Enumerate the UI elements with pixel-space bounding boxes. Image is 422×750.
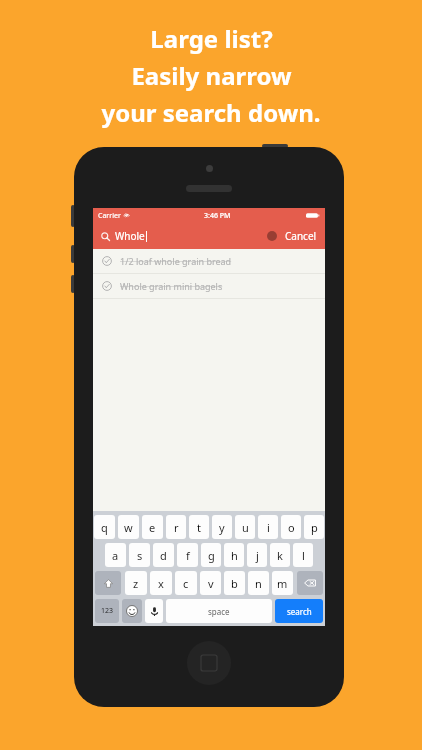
button[interactable]: Search (101, 223, 317, 249)
staticText: Large list? (150, 22, 273, 55)
staticText: Carrier (98, 211, 121, 221)
button[interactable]: x (150, 571, 172, 595)
staticText: o (288, 520, 295, 535)
staticText: i (267, 520, 270, 535)
button[interactable]: v (200, 571, 221, 595)
button[interactable]: 1/2 loaf whole grain bread (93, 249, 325, 273)
other: Search (101, 232, 110, 241)
button[interactable]: u (235, 515, 255, 539)
button[interactable]: Whole grain mini bagels (93, 274, 325, 298)
button[interactable]: s (129, 543, 150, 567)
button[interactable]: g (201, 543, 221, 567)
staticText: l (302, 548, 305, 563)
staticText: p (311, 520, 318, 535)
button[interactable]: j (247, 543, 267, 567)
staticText: h (231, 548, 238, 563)
button[interactable]: Dictate (145, 599, 163, 623)
button[interactable]: search (275, 599, 323, 623)
staticText: k (277, 548, 283, 563)
staticText: 1/2 loaf whole grain bread (120, 255, 232, 267)
staticText: x (158, 576, 164, 591)
staticText: your search down. (101, 96, 321, 129)
button[interactable]: e (142, 515, 163, 539)
staticText: a (112, 548, 119, 563)
staticText: search (287, 606, 312, 617)
button[interactable]: f (177, 543, 198, 567)
staticText: t (197, 520, 201, 535)
staticText: Easily narrow (131, 59, 292, 92)
button[interactable]: d (153, 543, 174, 567)
button[interactable]: 123 (95, 599, 119, 623)
button[interactable]: t (189, 515, 209, 539)
button[interactable]: w (118, 515, 139, 539)
button[interactable]: z (125, 571, 147, 595)
staticText: Whole grain mini bagels (120, 280, 223, 292)
staticText: z (133, 576, 139, 591)
button[interactable]: Cancel (285, 229, 317, 243)
button[interactable]: k (270, 543, 290, 567)
button[interactable]: Emoji (122, 599, 142, 623)
button[interactable]: p (304, 515, 324, 539)
button[interactable]: h (224, 543, 244, 567)
staticText: g (208, 548, 215, 563)
staticText: n (255, 576, 262, 591)
button[interactable]: o (281, 515, 301, 539)
button[interactable]: r (166, 515, 186, 539)
staticText: 3:46 PM (204, 211, 231, 221)
staticText: space (208, 606, 230, 617)
staticText: s (137, 548, 143, 563)
button[interactable]: space (166, 599, 272, 623)
staticText: w (124, 520, 133, 535)
button[interactable]: q (94, 515, 115, 539)
staticText: m (277, 576, 288, 591)
button[interactable]: l (293, 543, 313, 567)
button[interactable]: y (212, 515, 232, 539)
staticText: u (242, 520, 249, 535)
staticText: j (256, 548, 259, 563)
staticText: Cancel (285, 229, 317, 243)
staticText: 123 (101, 606, 114, 616)
button[interactable]: i (258, 515, 278, 539)
button[interactable]: n (248, 571, 269, 595)
staticText: c (183, 576, 189, 591)
button[interactable]: b (224, 571, 245, 595)
staticText: Whole (115, 229, 145, 243)
staticText: y (219, 520, 225, 535)
staticText: d (160, 548, 167, 563)
button[interactable]: c (175, 571, 197, 595)
staticText: r (174, 520, 179, 535)
button[interactable]: Shift (95, 571, 121, 595)
staticText: q (101, 520, 108, 535)
button[interactable]: Clear text (267, 231, 277, 241)
button[interactable]: a (105, 543, 126, 567)
staticText: f (186, 548, 190, 563)
button[interactable]: m (272, 571, 293, 595)
staticText: e (149, 520, 156, 535)
staticText: b (231, 576, 238, 591)
button[interactable]: Backspace (297, 571, 323, 595)
staticText: v (208, 576, 214, 591)
